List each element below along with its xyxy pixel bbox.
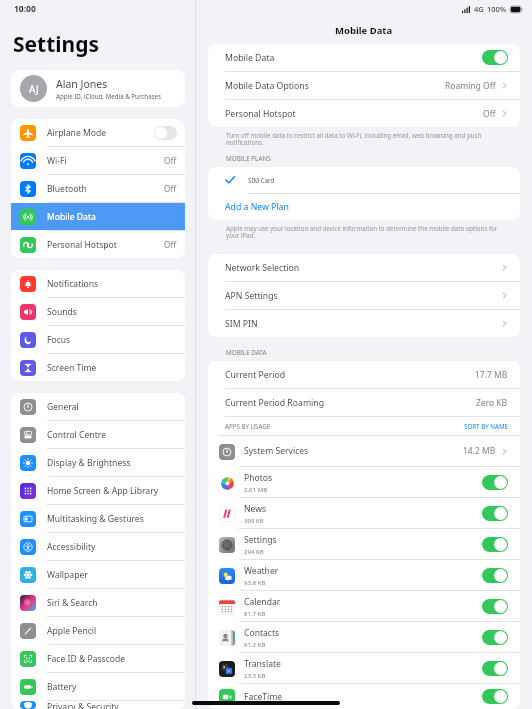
- staticText: Apple ID, iCloud, Media & Purchases: [56, 92, 162, 100]
- staticText: 93.8 KB: [244, 578, 266, 586]
- staticText: Settings: [244, 534, 277, 546]
- button[interactable]: FaceTime: [208, 684, 520, 709]
- staticText: SIM PIN: [225, 318, 496, 330]
- staticText: Bluetooth: [47, 183, 164, 195]
- button[interactable]: SIM Card: [208, 167, 520, 193]
- button[interactable]: Off: [154, 126, 177, 140]
- staticText: Home Screen & App Library: [47, 485, 177, 497]
- button[interactable]: Notifications: [11, 270, 185, 297]
- button[interactable]: Battery: [11, 673, 185, 700]
- staticText: Current Period Roaming: [225, 397, 476, 409]
- staticText: Settings: [13, 30, 100, 59]
- button[interactable]: Personal Hotspot: [208, 100, 520, 127]
- button[interactable]: Face ID & Passcode: [11, 645, 185, 672]
- staticText: 10:00: [14, 3, 36, 15]
- staticText: FaceTime: [244, 691, 283, 703]
- staticText: Photos: [244, 472, 273, 484]
- staticText: Personal Hotspot: [225, 108, 483, 120]
- button[interactable]: On: [482, 630, 508, 645]
- button[interactable]: On: [482, 689, 508, 704]
- staticText: 2.61 MB: [244, 485, 268, 493]
- button[interactable]: Current Period: [208, 361, 520, 388]
- button[interactable]: General: [11, 393, 185, 420]
- staticText: Mobile Data Options: [225, 80, 445, 92]
- staticText: AJ: [29, 82, 39, 96]
- button[interactable]: Current Period Roaming: [208, 389, 520, 416]
- staticText: 294 KB: [244, 547, 264, 555]
- staticText: 17.7 MB: [475, 369, 508, 381]
- button[interactable]: Sounds: [11, 298, 185, 325]
- button[interactable]: Apple Pencil: [11, 617, 185, 644]
- staticText: 81.7 KB: [244, 609, 266, 617]
- button[interactable]: Bluetooth: [11, 175, 185, 202]
- staticText: Apple may use your location and device i…: [226, 224, 506, 240]
- button[interactable]: Display & Brightness: [11, 449, 185, 476]
- staticText: Off: [164, 183, 177, 194]
- staticText: Privacy & Security: [47, 701, 177, 709]
- staticText: APN Settings: [225, 290, 496, 302]
- button[interactable]: Settings: [208, 529, 520, 559]
- staticText: MOBILE PLANS: [226, 154, 271, 163]
- staticText: Accessibility: [47, 541, 177, 553]
- button[interactable]: Mobile Data Options: [208, 72, 520, 99]
- staticText: Sounds: [47, 306, 177, 318]
- button[interactable]: Privacy & Security: [11, 701, 185, 709]
- staticText: Weather: [244, 565, 279, 577]
- staticText: Off: [164, 155, 177, 166]
- staticText: SORT BY NAME: [464, 422, 508, 430]
- button[interactable]: Calendar: [208, 591, 520, 621]
- button[interactable]: Siri & Search: [11, 589, 185, 616]
- button[interactable]: On: [482, 568, 508, 583]
- staticText: Off: [483, 108, 496, 120]
- button[interactable]: Mobile Data: [11, 203, 185, 230]
- button[interactable]: APN Settings: [208, 282, 520, 309]
- staticText: 81.2 KB: [244, 640, 266, 648]
- staticText: 309 KB: [244, 516, 264, 524]
- button[interactable]: Wi-Fi: [11, 147, 185, 174]
- staticText: News: [244, 503, 267, 515]
- button[interactable]: On: [482, 506, 508, 521]
- staticText: Roaming Off: [445, 80, 496, 92]
- staticText: Siri & Search: [47, 597, 177, 609]
- button[interactable]: Weather: [208, 560, 520, 590]
- staticText: System Services: [244, 445, 309, 457]
- button[interactable]: Control Centre: [11, 421, 185, 448]
- staticText: 23.3 KB: [244, 671, 266, 679]
- button[interactable]: On: [482, 537, 508, 552]
- staticText: Display & Brightness: [47, 457, 177, 469]
- button[interactable]: On: [482, 599, 508, 614]
- button[interactable]: Multitasking & Gestures: [11, 505, 185, 532]
- staticText: Network Selection: [225, 262, 496, 274]
- button[interactable]: Home Screen & App Library: [11, 477, 185, 504]
- button[interactable]: On: [482, 50, 508, 65]
- button[interactable]: Mobile Data: [208, 44, 520, 71]
- button[interactable]: Screen Time: [11, 354, 185, 381]
- button[interactable]: Wallpaper: [11, 561, 185, 588]
- button[interactable]: Personal Hotspot: [11, 231, 185, 258]
- button[interactable]: Accessibility: [11, 533, 185, 560]
- button[interactable]: Airplane Mode: [11, 119, 185, 146]
- button[interactable]: On: [482, 661, 508, 676]
- staticText: Calendar: [244, 596, 281, 608]
- staticText: Notifications: [47, 278, 177, 290]
- staticText: Personal Hotspot: [47, 239, 164, 251]
- staticText: Mobile Data: [47, 211, 177, 223]
- button[interactable]: Photos: [208, 467, 520, 497]
- button[interactable]: Add a New Plan: [208, 194, 520, 220]
- button[interactable]: System Services: [208, 436, 520, 466]
- button[interactable]: Focus: [11, 326, 185, 353]
- button[interactable]: Contacts: [208, 622, 520, 652]
- button[interactable]: Network Selection: [208, 254, 520, 281]
- staticText: General: [47, 401, 177, 413]
- button[interactable]: AJ: [11, 70, 185, 107]
- staticText: Mobile Data: [335, 24, 393, 37]
- button[interactable]: Translate: [208, 653, 520, 683]
- staticText: SIM Card: [248, 176, 275, 184]
- staticText: Contacts: [244, 627, 280, 639]
- button[interactable]: News: [208, 498, 520, 528]
- button[interactable]: SIM PIN: [208, 310, 520, 337]
- staticText: Focus: [47, 334, 177, 346]
- button[interactable]: On: [482, 475, 508, 490]
- button[interactable]: SORT BY NAME: [464, 422, 508, 430]
- staticText: Add a New Plan: [225, 201, 289, 213]
